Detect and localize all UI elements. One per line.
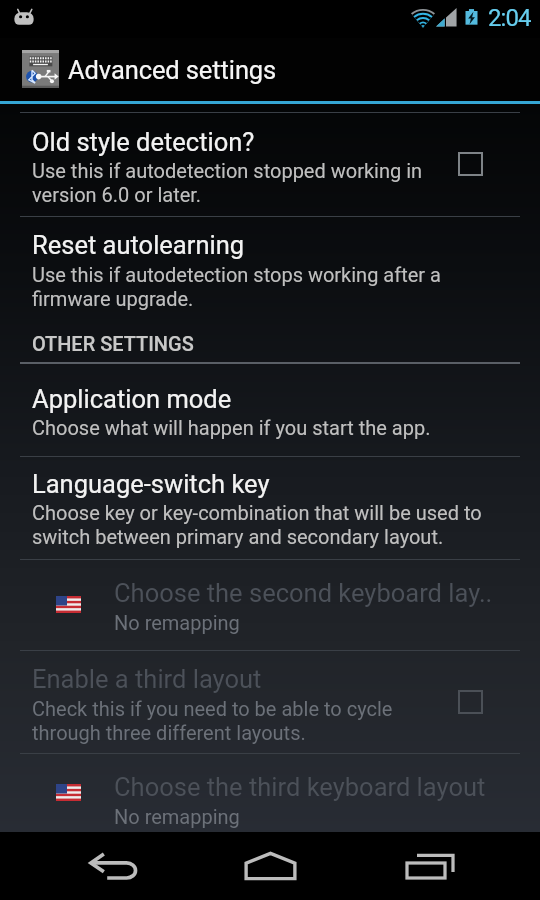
button[interactable]: Reset autolearning xyxy=(0,216,540,328)
staticText: Choose the second keyboard lay.. xyxy=(114,578,504,608)
staticText: No remapping xyxy=(114,805,504,828)
button[interactable]: Old style detection? xyxy=(0,112,540,216)
button[interactable]: Choose the second keyboard lay.. xyxy=(0,559,540,650)
staticText: No remapping xyxy=(114,611,504,634)
staticText: Reset autolearning xyxy=(32,230,487,260)
button[interactable]: Toggle Enable a third layout xyxy=(435,650,505,753)
staticText: Old style detection? xyxy=(32,127,440,157)
button[interactable]: Enable a third layout xyxy=(0,650,540,753)
button[interactable]: Recent apps xyxy=(340,832,520,900)
staticText: Choose the third keyboard layout xyxy=(114,772,504,802)
staticText: Enable a third layout xyxy=(32,664,440,694)
staticText: OTHER SETTINGS xyxy=(32,332,194,355)
staticText: Advanced settings xyxy=(68,55,277,85)
button[interactable]: Application mode xyxy=(0,362,540,456)
staticText: Use this if autodetection stops working … xyxy=(32,263,487,311)
staticText: Language-switch key xyxy=(32,469,487,499)
staticText: Check this if you need to be able to cyc… xyxy=(32,697,440,745)
staticText: 2:04 xyxy=(488,4,531,32)
button[interactable]: Language-switch key xyxy=(0,456,540,559)
button[interactable]: Back xyxy=(22,832,202,900)
button[interactable]: Home xyxy=(180,832,360,900)
staticText: Choose what will happen if you start the… xyxy=(32,416,487,439)
staticText: Use this if autodetection stopped workin… xyxy=(32,159,440,207)
staticText: Choose key or key-combination that will … xyxy=(32,501,487,549)
staticText: Application mode xyxy=(32,384,487,414)
button[interactable]: Advanced settings xyxy=(0,38,540,101)
button[interactable]: Toggle Old style detection? xyxy=(435,112,505,216)
button[interactable]: Choose the third keyboard layout xyxy=(0,753,540,832)
